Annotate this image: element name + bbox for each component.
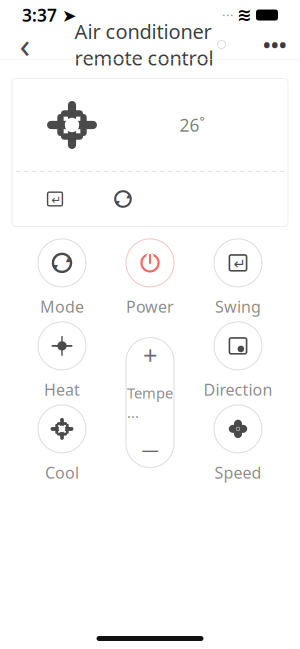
staticText: Swing [215,296,261,317]
staticText: Mode [40,296,84,317]
staticText: 3:37 ➤ [22,3,77,26]
staticText: ▴ [126,191,130,200]
staticText: 26˚ [179,113,204,136]
button[interactable]: More options [258,27,292,61]
button[interactable]: ▴ [18,240,106,315]
staticText: + [143,338,157,372]
button[interactable]: Back [8,27,42,61]
staticText: ‹ [19,21,30,67]
button[interactable]: Increase temperature [126,335,174,375]
staticText: — [141,438,158,461]
staticText: ··· [222,6,237,24]
staticText: Heat [44,379,80,400]
button[interactable]: Power [106,240,194,315]
staticText: Direction [203,379,272,400]
staticText: Speed [214,462,261,483]
staticText: Power [126,296,174,317]
button[interactable]: Direction [194,323,282,398]
button[interactable]: ↵ [194,240,282,315]
staticText: ≋ [237,5,252,25]
button[interactable]: Heat [18,323,106,398]
staticText: ▾ [53,261,58,272]
button[interactable]: Mode [106,182,140,216]
button[interactable]: Swing [38,182,72,216]
staticText: Tempe... [127,383,173,422]
staticText: ••• [263,31,287,58]
button[interactable]: Cool [18,406,106,481]
staticText: ↵ [51,193,61,207]
staticText: ▴ [66,254,71,264]
staticText: Air conditioner remote control [74,18,213,71]
staticText: ▾ [116,198,120,207]
button[interactable]: Speed [194,406,282,481]
staticText: ↵ [233,256,245,272]
staticText: Cool [45,462,79,483]
button[interactable]: Decrease temperature [126,430,174,470]
